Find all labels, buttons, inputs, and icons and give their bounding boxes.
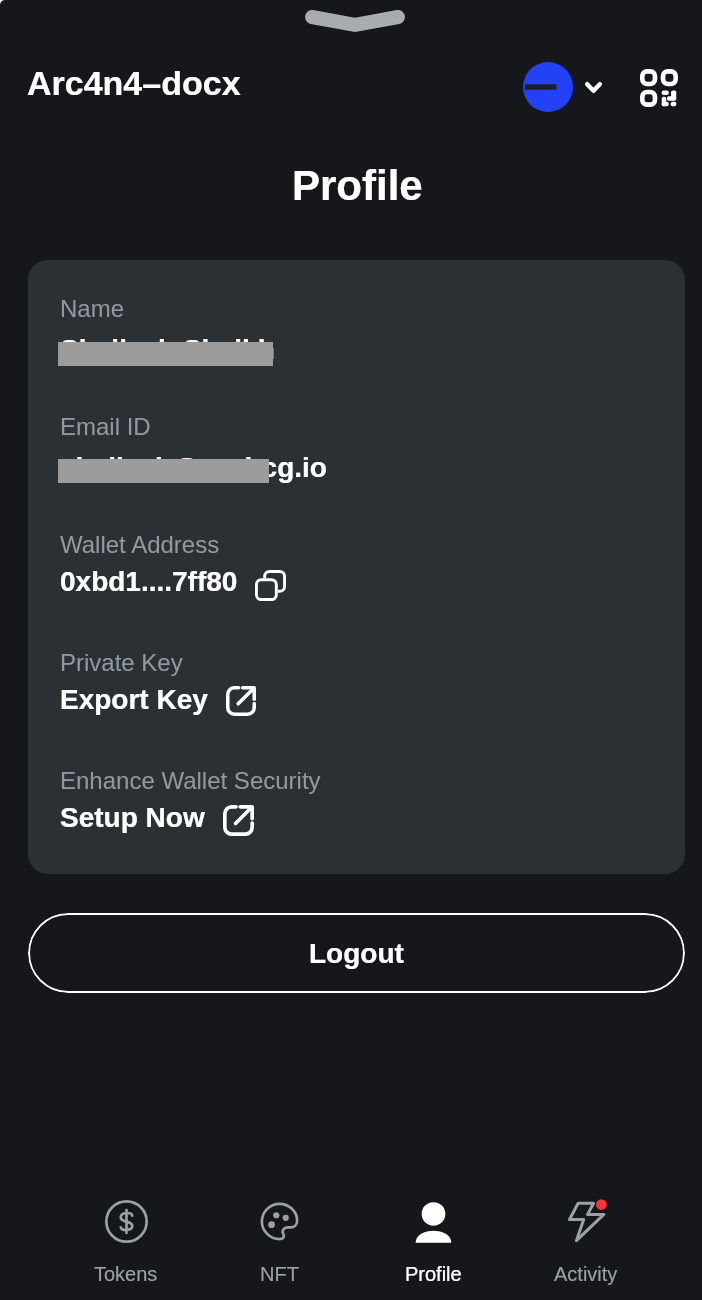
button[interactable]: Setup Now [60,802,254,833]
button[interactable]: Export Key [60,684,256,715]
staticText: Profile [292,162,423,209]
staticText: Arc4n4–docx [27,64,241,102]
staticText: 0xbd1....7ff80 [60,566,238,597]
button[interactable]: Tokens [62,1182,190,1290]
staticText: Email ID [60,413,151,440]
button[interactable]: Scan QR code [636,65,682,111]
button[interactable]: 0xbd1....7ff80 [60,566,286,597]
button[interactable]: NFT [215,1182,343,1290]
staticText: NFT [260,1263,299,1285]
staticText: Name [60,295,125,322]
staticText: Wallet Address [60,531,220,558]
button[interactable]: Activity [522,1182,650,1290]
staticText: Logout [309,938,404,969]
staticText: shailesh@xyzbcg.io [60,452,327,483]
staticText: Private Key [60,649,183,676]
button[interactable]: Profile [369,1182,497,1290]
button[interactable]: Logout [28,913,685,993]
button[interactable]: Switch network [518,57,607,117]
staticText: Activity [554,1263,618,1285]
staticText: Enhance Wallet Security [60,767,321,794]
staticText: Export Key [60,684,208,715]
staticText: Setup Now [60,802,205,833]
staticText: Profile [405,1263,462,1285]
staticText: Shailesh Shaikh [60,334,275,365]
staticText: Tokens [94,1263,158,1285]
